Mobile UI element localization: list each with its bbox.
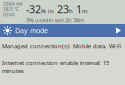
staticText: Managed connection(s): Mobile data, Wi-F… [2, 42, 121, 50]
staticText: Internet connection enable interval: 15 … [2, 59, 109, 75]
staticText: -32% in 23h 1m [26, 2, 88, 16]
staticText: 3964 mV [3, 1, 23, 7]
button[interactable]: Day mode [0, 24, 125, 37]
staticText: 38.5 °C [3, 6, 19, 12]
staticText: Li-Ion [3, 11, 15, 17]
staticText: Day mode [15, 26, 48, 35]
staticText: 3% used in last 2h 38m [26, 16, 84, 24]
